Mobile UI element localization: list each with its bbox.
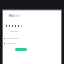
staticText: there: [13, 14, 20, 18]
staticText: Another way: [6, 37, 19, 39]
button[interactable]: [6, 25, 9, 27]
button[interactable]: Verify: [15, 48, 27, 51]
button[interactable]: [21, 25, 24, 27]
button[interactable]: [18, 25, 21, 27]
button[interactable]: Need help: [4, 42, 17, 44]
button[interactable]: [12, 25, 15, 27]
staticText: Hi: [9, 13, 13, 18]
button[interactable]: [9, 25, 12, 27]
button[interactable]: Another way: [4, 37, 19, 39]
button[interactable]: [15, 25, 18, 27]
button[interactable]: Resend: [10, 29, 19, 32]
staticText: Resend: [10, 29, 19, 32]
staticText: Need help: [6, 42, 17, 44]
button[interactable]: Hi: [9, 13, 20, 18]
